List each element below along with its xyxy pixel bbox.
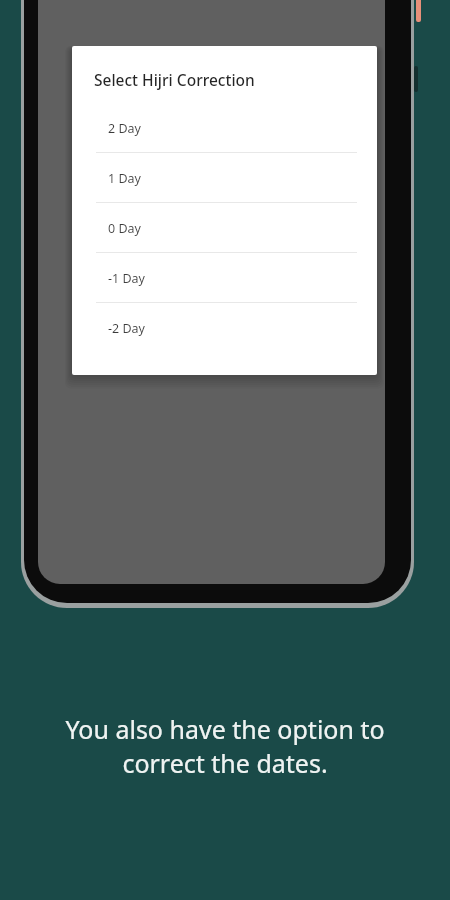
button[interactable]: -2 Day — [72, 303, 377, 353]
button[interactable]: 1 Day — [72, 153, 377, 203]
button[interactable]: -1 Day — [72, 253, 377, 303]
staticText: 1 Day — [108, 170, 141, 187]
other: Power button — [416, 0, 421, 22]
staticText: -1 Day — [108, 270, 145, 287]
button[interactable]: 2 Day — [72, 103, 377, 153]
staticText: -2 Day — [108, 320, 145, 337]
button[interactable]: 0 Day — [72, 203, 377, 253]
staticText: 2 Day — [108, 120, 141, 137]
staticText: You also have the option to correct the … — [25, 712, 425, 781]
staticText: 0 Day — [108, 220, 141, 237]
staticText: Select Hijri Correction — [94, 69, 255, 90]
